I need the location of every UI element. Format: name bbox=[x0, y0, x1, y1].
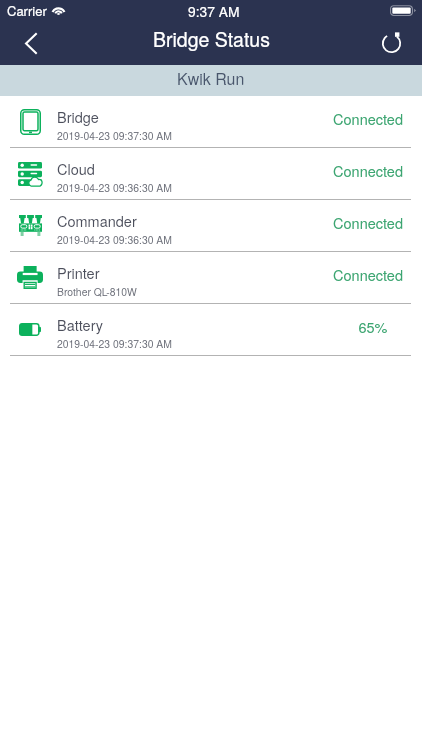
staticText: Connected bbox=[333, 108, 403, 129]
staticText: 2019-04-23 09:37:30 AM bbox=[57, 128, 172, 143]
staticText: Cloud bbox=[57, 158, 95, 179]
staticText: Connected bbox=[333, 264, 403, 285]
staticText: 9:37 AM bbox=[188, 1, 240, 21]
staticText: 2019-04-23 09:36:30 AM bbox=[57, 180, 172, 195]
staticText: Brother QL-810W bbox=[57, 284, 137, 299]
staticText: 2019-04-23 09:37:30 AM bbox=[57, 336, 172, 351]
button[interactable]: Bridge bbox=[0, 96, 422, 148]
button[interactable]: Printer bbox=[0, 252, 422, 304]
staticText: 65% bbox=[358, 316, 388, 337]
staticText: Kwik Run bbox=[177, 67, 245, 90]
staticText: 2019-04-23 09:36:30 AM bbox=[57, 232, 172, 247]
staticText: Carrier bbox=[7, 1, 47, 20]
staticText: Connected bbox=[333, 212, 403, 233]
button[interactable]: Cloud bbox=[0, 148, 422, 200]
staticText: Bridge Status bbox=[153, 25, 270, 53]
staticText: Battery bbox=[57, 314, 104, 335]
button[interactable]: Commander bbox=[0, 200, 422, 252]
staticText: Connected bbox=[333, 160, 403, 181]
staticText: Printer bbox=[57, 262, 100, 283]
staticText: Bridge bbox=[57, 106, 99, 127]
button[interactable]: Refresh bbox=[369, 21, 413, 65]
button[interactable]: Battery bbox=[0, 304, 422, 356]
button[interactable]: Back bbox=[9, 21, 53, 65]
staticText: Commander bbox=[57, 210, 137, 231]
